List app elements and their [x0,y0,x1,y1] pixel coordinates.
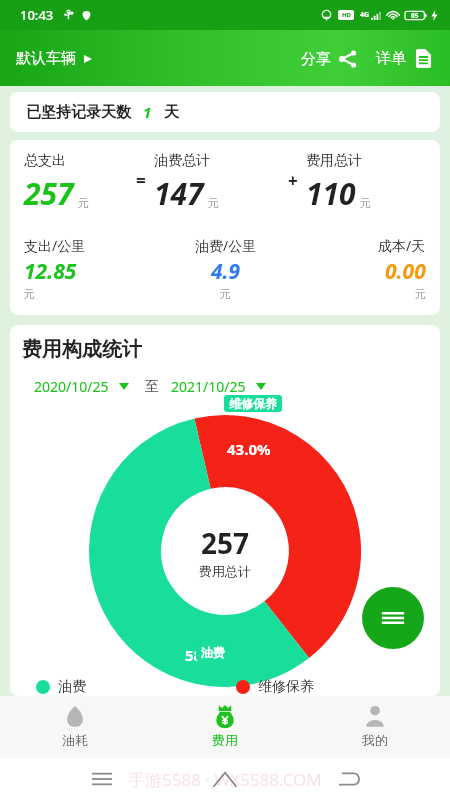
staticText: 油耗 [62,732,88,748]
staticText: HD [342,11,351,19]
staticText: 元 [208,196,219,210]
staticText: 手游5588 · WX5588.COM [128,768,322,791]
staticText: 110 [306,173,356,214]
button[interactable]: Home [203,758,247,800]
staticText: 总支出 [24,152,66,170]
staticText: 详单 [376,49,406,68]
staticText: 费用总计 [199,563,251,579]
staticText: 维修保养 [258,678,314,696]
button[interactable]: 菜单 [362,587,424,649]
staticText: 12.85 [24,257,77,286]
staticText: 油费 [201,645,225,660]
staticText: 147 [154,173,204,214]
staticText: 分享 [301,50,331,69]
staticText: 费用构成统计 [22,337,142,362]
staticText: 默认车辆 [16,49,76,68]
button[interactable]: 默认车辆 [10,43,98,74]
staticText: 成本/天 [378,236,426,255]
staticText: 支出/公里 [24,236,86,255]
staticText: 43.0% [227,439,271,459]
staticText: 至 [145,378,159,396]
button[interactable]: 费用 [150,696,300,758]
button[interactable]: 我的 [300,696,450,758]
button[interactable]: 分享 [295,43,364,75]
staticText: 58.0% [185,645,229,665]
staticText: 元 [415,287,426,301]
staticText: 257 [24,173,74,214]
staticText: 2021/10/25 [171,377,246,396]
button[interactable]: 2020/10/25 [32,374,131,399]
staticText: + [288,169,298,192]
staticText: 费用 [212,732,238,748]
staticText: 元 [220,287,231,301]
staticText: 元 [360,196,371,210]
staticText: 65 [411,11,419,20]
staticText: 油费 [58,678,86,696]
staticText: 1 [143,102,152,122]
button[interactable]: 详单 [370,42,440,75]
button[interactable]: Back [327,758,371,800]
staticText: 元 [24,287,35,301]
staticText: 维修保养 [229,396,277,411]
button[interactable]: 已坚持记录天数 [10,92,440,132]
staticText: 257 [201,524,250,562]
staticText: 4G [360,10,370,20]
staticText: 0.00 [385,257,426,286]
staticText: 10:43 [20,6,54,24]
staticText: 天 [164,103,179,122]
button[interactable]: 2021/10/25 [169,374,268,399]
staticText: 4.9 [211,257,241,286]
button[interactable]: 油耗 [0,696,150,758]
staticText: 元 [78,196,89,210]
staticText: 油费总计 [154,152,210,170]
staticText: 我的 [362,732,388,748]
button[interactable]: Recents [80,758,124,800]
staticText: 油费/公里 [195,236,257,255]
staticText: 已坚持记录天数 [26,103,131,122]
staticText: 2020/10/25 [34,377,109,396]
staticText: = [136,169,146,192]
staticText: 费用总计 [306,152,362,170]
button[interactable]: 总支出 [10,140,440,315]
